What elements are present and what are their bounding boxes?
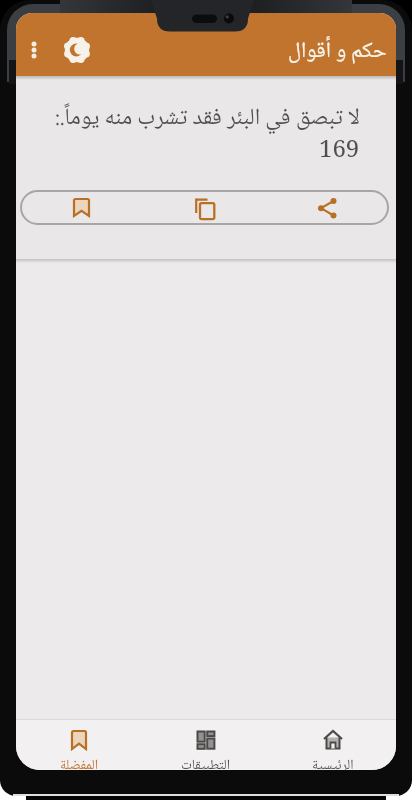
staticText: حكم و أقوال: [288, 33, 387, 70]
staticText: الرئيسية: [312, 754, 354, 770]
button[interactable]: [61, 34, 93, 66]
button[interactable]: المفضلة: [16, 720, 142, 770]
button[interactable]: [20, 36, 48, 64]
button[interactable]: التطبيقات: [142, 720, 269, 770]
button[interactable]: [266, 190, 389, 225]
staticText: المفضلة: [60, 754, 99, 770]
staticText: التطبيقات: [181, 754, 231, 770]
button[interactable]: [20, 190, 143, 225]
staticText: 169: [319, 131, 360, 172]
button[interactable]: الرئيسية: [269, 720, 396, 770]
button[interactable]: [143, 190, 266, 225]
staticText: لا تبصق في البئر فقد تشرب منه يوماً.:: [55, 99, 360, 138]
